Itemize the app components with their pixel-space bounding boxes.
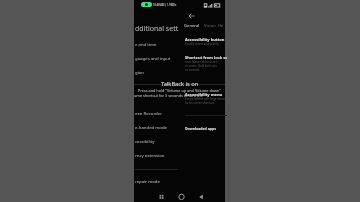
staticText: tions feature shortcut to t: [185, 60, 218, 64]
button[interactable]: e-handed mode: [134, 120, 225, 134]
button[interactable]: rncy extension: [134, 148, 225, 162]
staticText: Shortcut from lock scr: [185, 55, 227, 60]
button[interactable]: guages and input: [134, 51, 225, 65]
staticText: Vision: [204, 23, 216, 29]
staticText: ck screen. Hold both volu: [185, 64, 217, 68]
staticText: Downloaded apps: [185, 126, 216, 131]
staticText: rncy extension: [135, 152, 165, 158]
staticText: guages and input: [135, 55, 171, 61]
staticText: dditional sett: [135, 24, 179, 34]
staticText: Quickly access accessibility: [185, 42, 219, 46]
staticText: Control device with large menu: [185, 97, 225, 101]
staticText: repair mode: [135, 178, 160, 184]
staticText: He: [218, 23, 224, 29]
staticText: Press and hold "Volume up and Volume dow…: [138, 88, 221, 93]
staticText: General: [184, 23, 200, 29]
staticText: Accessibility menu: [185, 92, 223, 97]
button[interactable]: General: [182, 20, 201, 31]
staticText: 10:48 AM | 1.9KB/s: [153, 3, 177, 7]
button[interactable]: een Recorder: [134, 106, 225, 120]
button[interactable]: Home: [175, 190, 188, 202]
button[interactable]: e and time: [134, 37, 225, 51]
staticText: e and time: [135, 41, 157, 47]
button[interactable]: cessibility: [134, 134, 225, 148]
button[interactable]: repair mode: [134, 174, 225, 188]
staticText: for on-screen shortcuts: [185, 101, 215, 105]
staticText: cessibility: [135, 138, 155, 144]
button[interactable]: Back: [187, 11, 197, 21]
staticText: ume shortcut for 3 seconds to turn off.: [134, 93, 203, 98]
staticText: TalkBack is on: [161, 80, 199, 88]
button[interactable]: gion: [134, 65, 225, 79]
staticText: gion: [135, 69, 145, 75]
staticText: e-handed mode: [135, 124, 168, 130]
button[interactable]: Shortcut from lock scr: [185, 52, 227, 74]
button[interactable]: He: [218, 20, 226, 31]
staticText: een Recorder: [135, 110, 162, 116]
button[interactable]: Vision: [201, 20, 218, 31]
staticText: ee seconds.: [185, 68, 200, 72]
staticText: Accessibility button: [185, 37, 225, 42]
button[interactable]: Accessibility menu: [185, 89, 227, 108]
button[interactable]: Recent apps: [155, 190, 168, 202]
button[interactable]: Accessibility button: [185, 34, 227, 48]
button[interactable]: Back: [195, 190, 208, 202]
